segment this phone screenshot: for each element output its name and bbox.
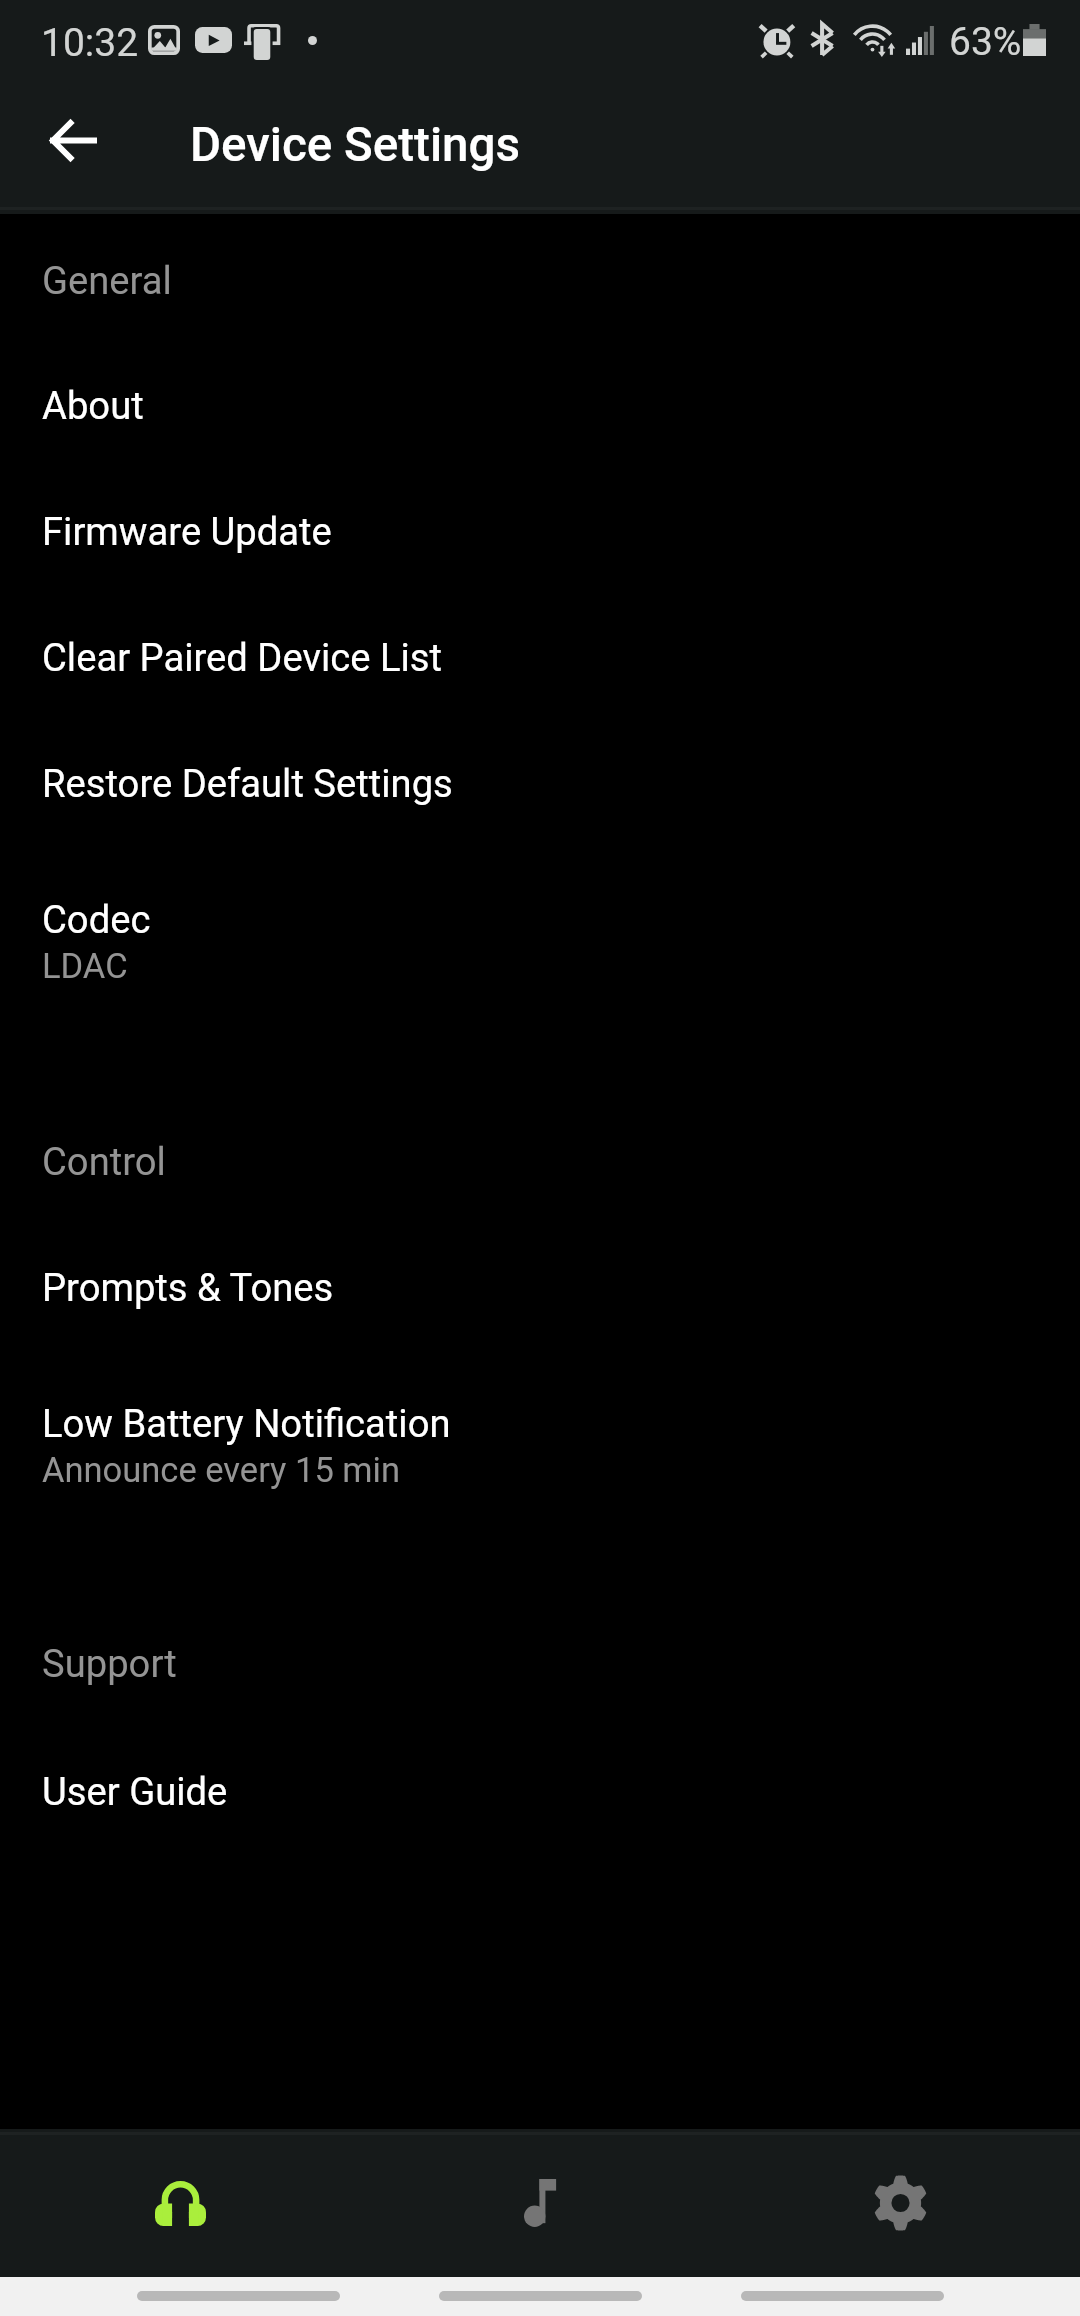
staticText: Announce every 15 min	[42, 1450, 401, 1490]
button[interactable]: User Guide	[0, 1742, 1080, 1834]
button[interactable]: Device	[0, 2129, 360, 2277]
staticText: General	[42, 259, 172, 304]
staticText: Control	[42, 1140, 166, 1185]
staticText: Prompts & Tones	[42, 1266, 334, 1311]
staticText: 10:32	[41, 20, 139, 66]
staticText: Firmware Update	[42, 510, 332, 555]
button[interactable]: Firmware Update	[0, 482, 1080, 574]
staticText: Restore Default Settings	[42, 762, 453, 807]
staticText: LDAC	[42, 946, 128, 986]
staticText: Clear Paired Device List	[42, 636, 442, 681]
staticText: User Guide	[42, 1770, 228, 1815]
button[interactable]: About	[0, 356, 1080, 448]
button[interactable]: Clear Paired Device List	[0, 608, 1080, 700]
button[interactable]: Restore Default Settings	[0, 734, 1080, 826]
button[interactable]: Low Battery Notification	[0, 1374, 1080, 1514]
staticText: 63%	[949, 19, 1022, 65]
staticText: Codec	[42, 898, 151, 943]
button[interactable]: Settings	[720, 2129, 1080, 2277]
button[interactable]: Back	[26, 93, 120, 187]
staticText: Low Battery Notification	[42, 1402, 451, 1447]
button[interactable]: Codec	[0, 870, 1080, 1010]
button[interactable]: Music	[360, 2129, 720, 2277]
staticText: Support	[42, 1642, 177, 1687]
button[interactable]: Prompts & Tones	[0, 1238, 1080, 1330]
staticText: About	[42, 384, 144, 429]
staticText: Device Settings	[190, 117, 520, 173]
